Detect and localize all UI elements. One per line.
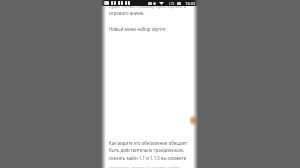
staticText: Как видите это обновление обещает bbox=[109, 140, 188, 146]
staticText: игрового аниме. bbox=[109, 10, 145, 16]
staticText: Новый мини-набор skyrim: bbox=[109, 26, 167, 32]
staticText: LTE bbox=[169, 1, 175, 6]
staticText: 13:03 bbox=[185, 1, 196, 6]
staticText: скачать майн 1.1 и 1.1.5 вы сможете bbox=[109, 155, 187, 161]
staticText: уже очень скоро на нашем сайте. bbox=[109, 165, 181, 168]
staticText: будет по-настоящему просторным и детализ… bbox=[109, 3, 198, 9]
button[interactable]: Scroll to top bbox=[190, 115, 197, 126]
staticText: быть действительно грандиозным, bbox=[109, 147, 185, 153]
